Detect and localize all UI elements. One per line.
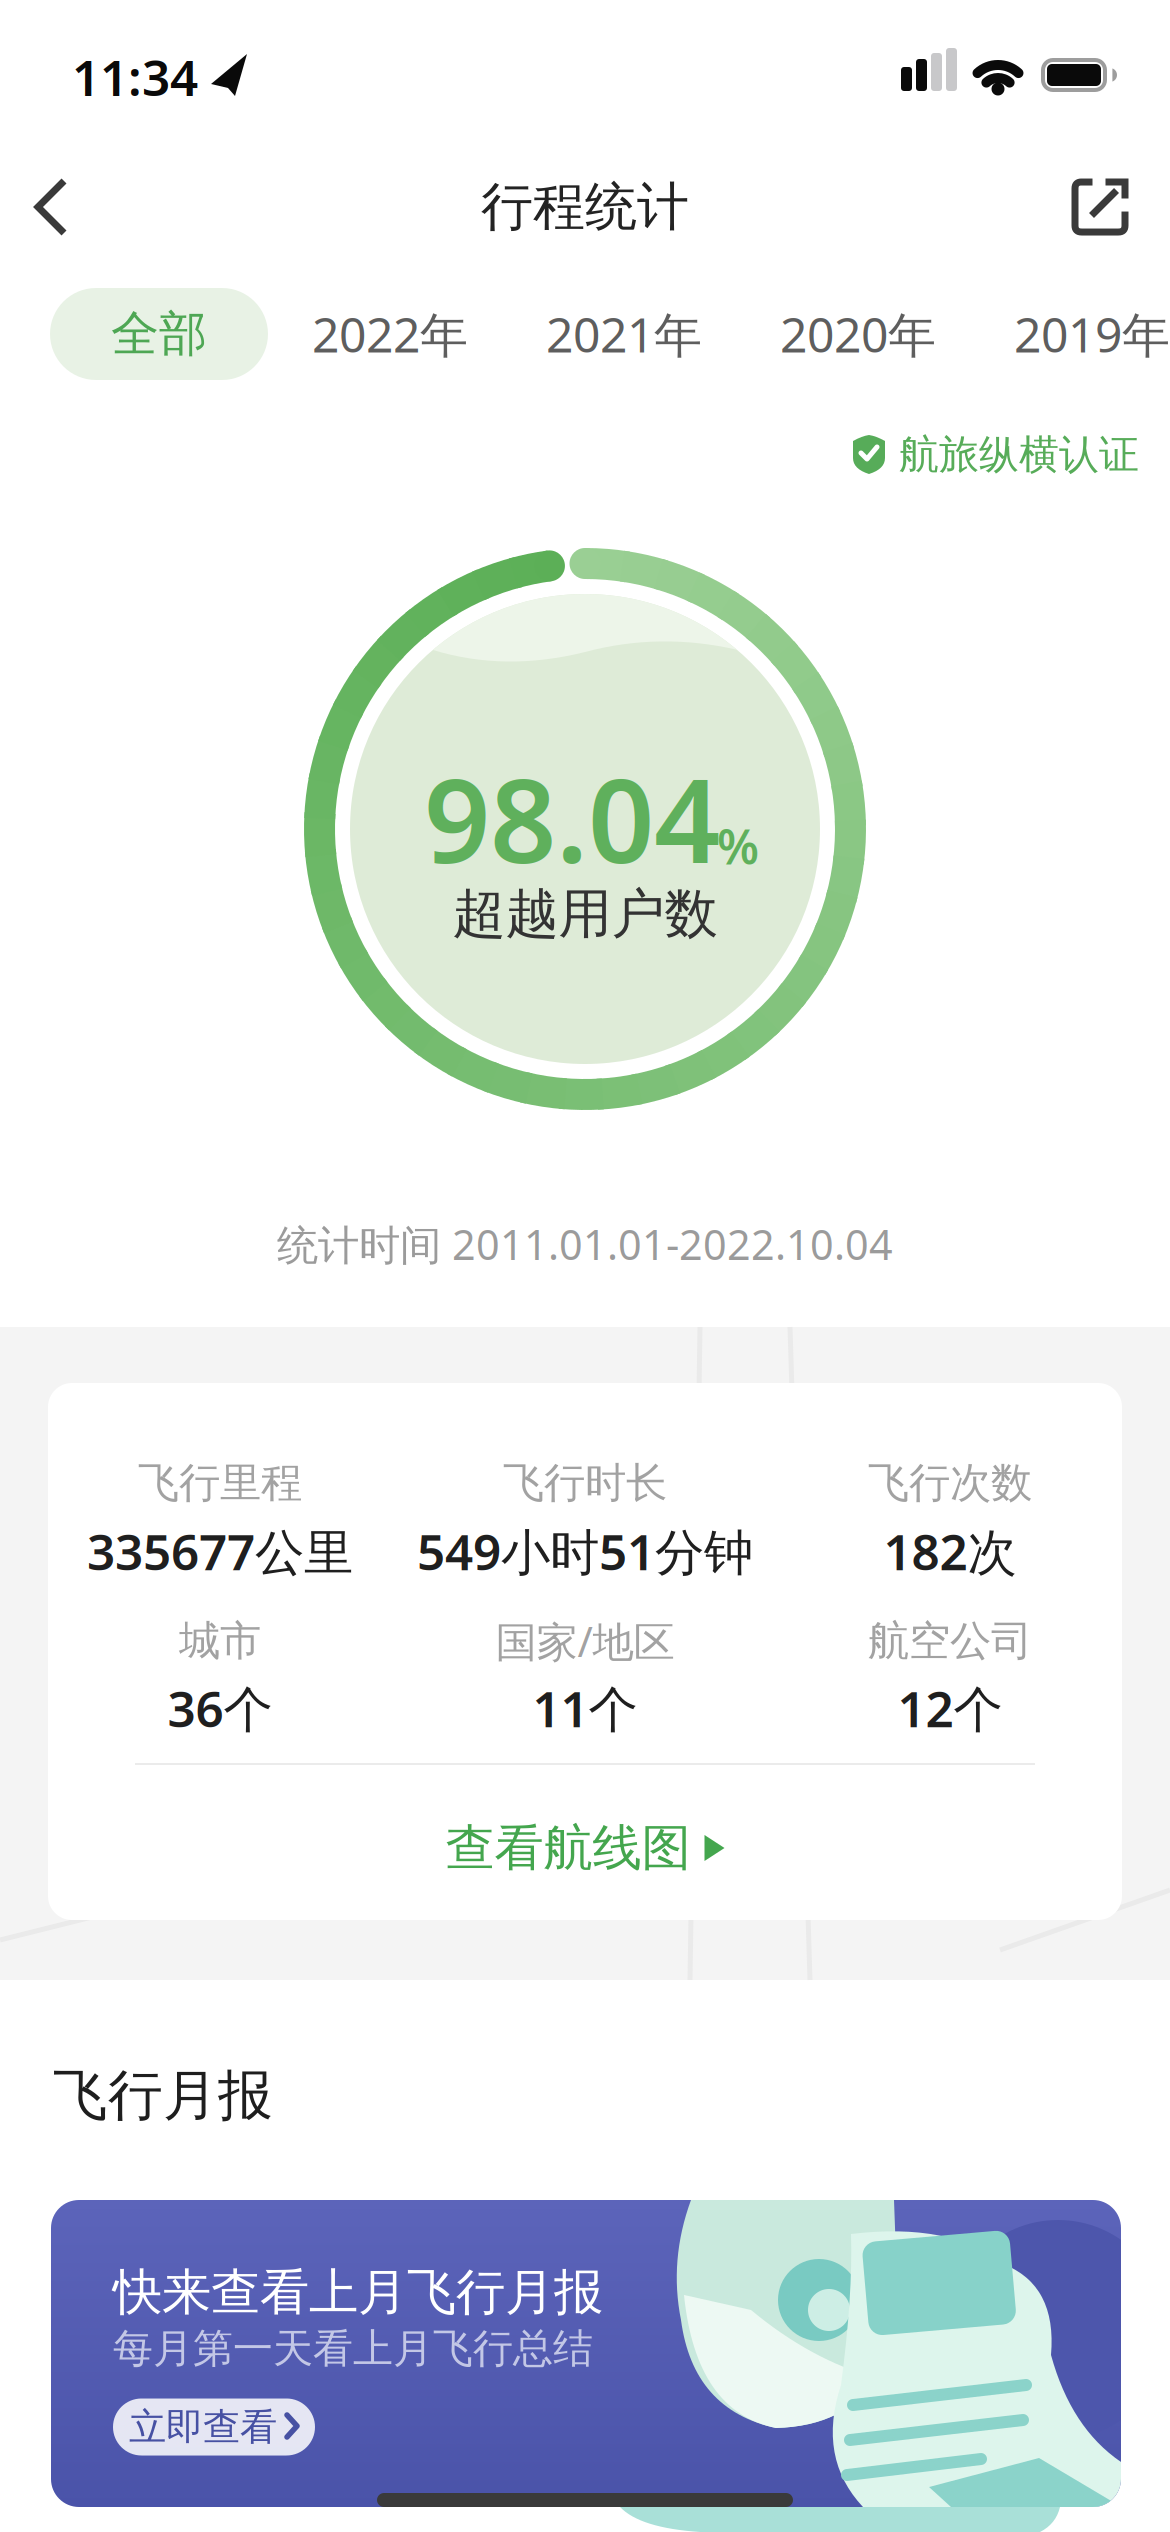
staticText: 行程统计 (481, 175, 689, 239)
staticText: 飞行里程 (138, 1458, 302, 1508)
staticText: 36个 (167, 1675, 272, 1741)
staticText: 2020年 (780, 302, 936, 366)
staticText: 飞行时长 (503, 1458, 667, 1508)
staticText: 航空公司 (868, 1616, 1032, 1666)
staticText: 2019年 (1014, 302, 1170, 366)
staticText: 国家/地区 (495, 1614, 674, 1668)
button[interactable]: 查看航线图 (385, 1803, 785, 1893)
staticText: 飞行月报 (53, 2062, 273, 2129)
button[interactable]: 2021年 (514, 288, 734, 380)
staticText: 11:34 (72, 44, 198, 109)
staticText: 统计时间 2011.01.01-2022.10.04 (277, 1217, 893, 1271)
staticText: 11个 (532, 1675, 637, 1741)
staticText: 查看航线图 (445, 1818, 690, 1878)
button[interactable]: 2020年 (748, 288, 968, 380)
staticText: 98.04 (424, 741, 720, 895)
staticText: 12个 (897, 1675, 1002, 1741)
staticText: % (717, 814, 759, 878)
button[interactable] (18, 171, 98, 243)
button[interactable] (1071, 178, 1128, 235)
staticText: 立即查看 (129, 2404, 277, 2450)
button[interactable]: 2019年 (982, 288, 1170, 380)
staticText: 2021年 (546, 302, 702, 366)
staticText: 城市 (179, 1616, 261, 1666)
staticText: 每月第一天看上月飞行总结 (113, 2324, 593, 2373)
staticText: 全部 (111, 304, 207, 363)
staticText: 335677公里 (87, 1518, 353, 1584)
button[interactable]: 快来查看上月飞行月报 (51, 2200, 1121, 2507)
staticText: 182次 (883, 1518, 1016, 1584)
button[interactable]: 2022年 (280, 288, 500, 380)
button[interactable]: 全部 (50, 288, 268, 380)
staticText: 超越用户数 (452, 881, 717, 947)
staticText: 航旅纵横认证 (899, 430, 1139, 479)
staticText: 549小时51分钟 (417, 1518, 753, 1584)
staticText: 快来查看上月飞行月报 (113, 2262, 603, 2323)
staticText: 飞行次数 (868, 1458, 1032, 1508)
staticText: 2022年 (312, 302, 468, 366)
